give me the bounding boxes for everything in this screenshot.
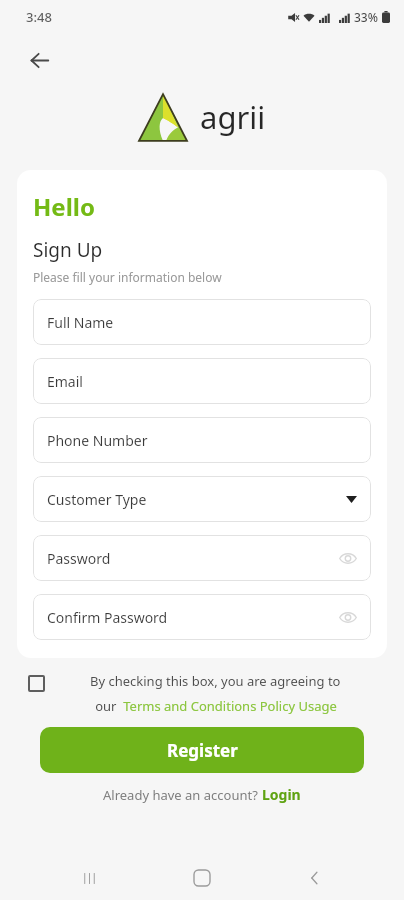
- staticText: Register: [167, 739, 238, 762]
- staticText: our Terms and Conditions Policy Usage: [95, 697, 337, 715]
- staticText: 33%: [354, 9, 378, 25]
- staticText: agrii: [200, 96, 266, 138]
- staticText: By checking this box, you are agreeing t…: [90, 672, 341, 690]
- button[interactable]: Phone Number: [33, 417, 371, 463]
- staticText: Login: [262, 785, 301, 804]
- staticText: Already have an account?: [103, 786, 262, 804]
- button[interactable]: Recent apps: [65, 856, 113, 900]
- button[interactable]: our Terms and Conditions Policy Usage: [95, 697, 337, 715]
- staticText: Email: [47, 372, 83, 391]
- button[interactable]: Customer Type: [33, 476, 371, 522]
- staticText: Full Name: [47, 313, 114, 332]
- button[interactable]: Back: [18, 39, 60, 81]
- button[interactable]: Accept terms checkbox: [28, 675, 45, 692]
- staticText: Confirm Password: [47, 608, 168, 627]
- button[interactable]: Back: [291, 856, 339, 900]
- button[interactable]: Register: [40, 727, 364, 773]
- button[interactable]: Login: [262, 785, 301, 804]
- staticText: Password: [47, 549, 111, 568]
- button[interactable]: Home: [178, 856, 226, 900]
- staticText: Hello: [33, 190, 95, 223]
- staticText: Please fill your information below: [33, 269, 222, 285]
- staticText: Phone Number: [47, 431, 148, 450]
- staticText: Customer Type: [47, 490, 147, 509]
- staticText: 3:48: [26, 8, 52, 26]
- staticText: Sign Up: [33, 237, 103, 263]
- button[interactable]: Password: [33, 535, 371, 581]
- button[interactable]: Confirm Password: [33, 594, 371, 640]
- button[interactable]: Email: [33, 358, 371, 404]
- button[interactable]: Full Name: [33, 299, 371, 345]
